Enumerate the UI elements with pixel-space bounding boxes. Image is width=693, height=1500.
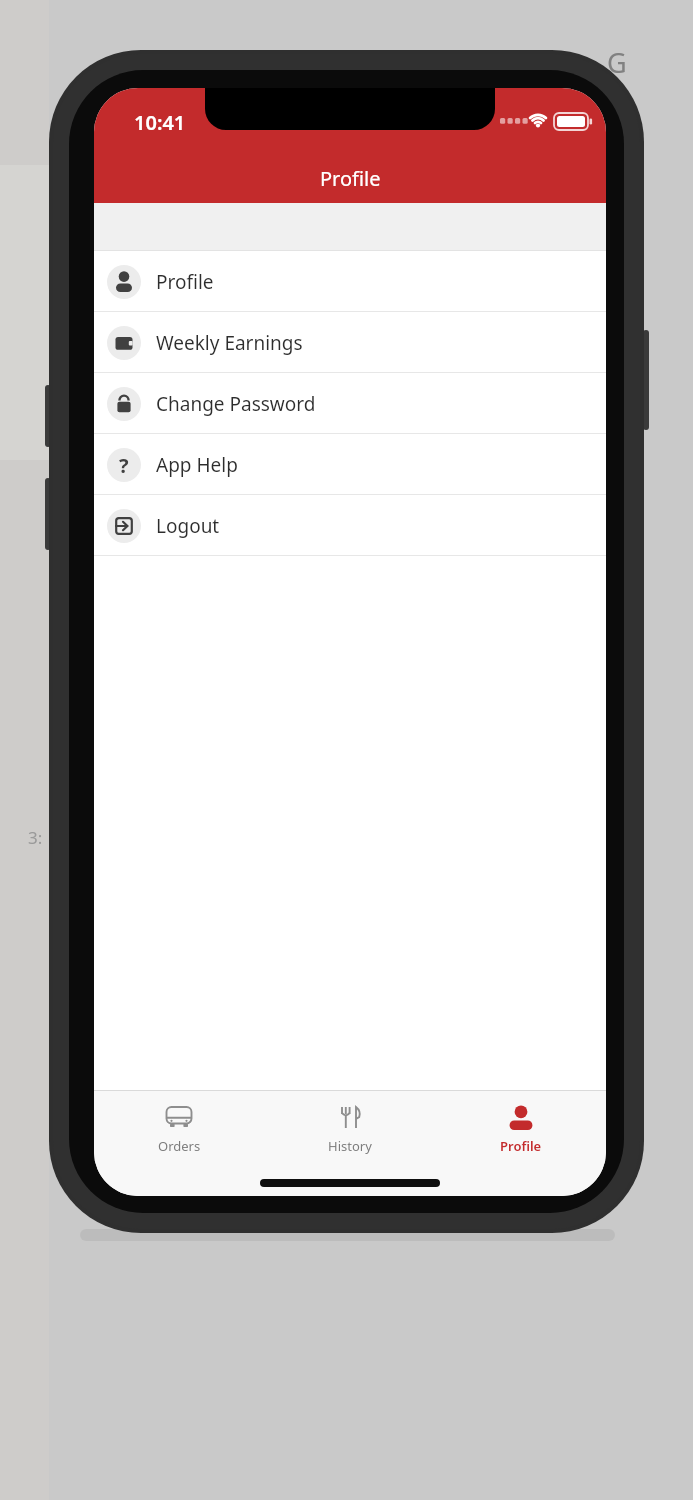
button[interactable]: Weekly Earnings	[94, 312, 606, 373]
staticText: Profile	[500, 1137, 542, 1155]
button[interactable]: Change Password	[94, 373, 606, 434]
staticText: ?	[119, 452, 129, 479]
staticText: Weekly Earnings	[156, 330, 303, 356]
staticText: 3:	[28, 826, 43, 849]
staticText: Profile	[320, 165, 381, 192]
staticText: 10:41	[134, 109, 186, 136]
staticText: Profile	[156, 269, 214, 295]
button[interactable]: History	[264, 1091, 435, 1196]
staticText: Change Password	[156, 391, 316, 417]
button[interactable]: ?	[94, 434, 606, 495]
button[interactable]: Orders	[94, 1091, 264, 1196]
staticText: G	[607, 44, 627, 81]
staticText: App Help	[156, 452, 238, 478]
button[interactable]: Profile	[435, 1091, 606, 1196]
staticText: Orders	[158, 1137, 201, 1155]
button[interactable]: Profile	[94, 251, 606, 312]
staticText: Logout	[156, 513, 220, 539]
button[interactable]: Logout	[94, 495, 606, 556]
staticText: History	[328, 1137, 372, 1155]
